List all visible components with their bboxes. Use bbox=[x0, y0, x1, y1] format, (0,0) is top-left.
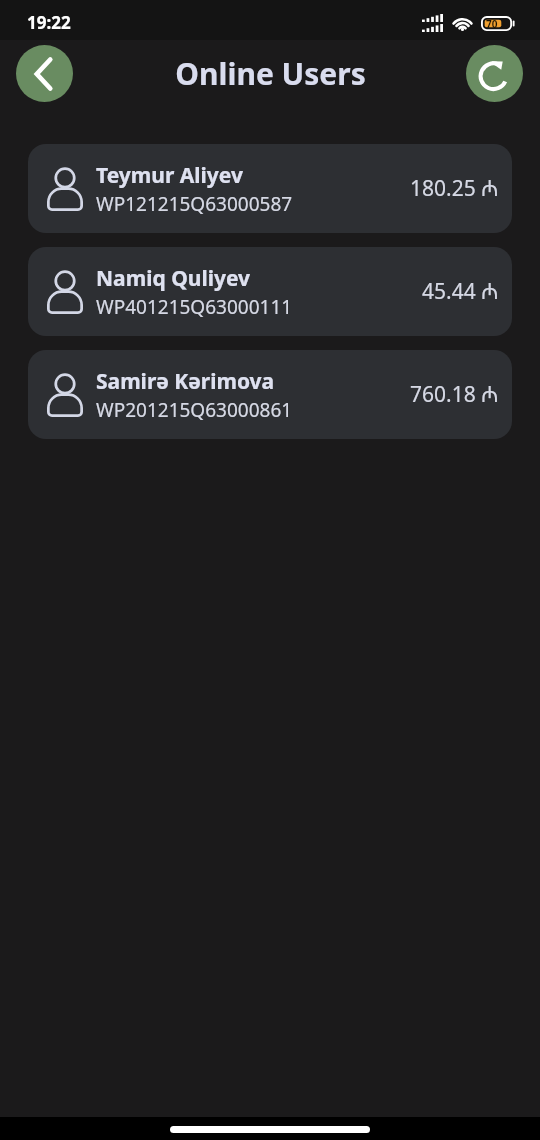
staticText: 70 bbox=[486, 17, 498, 31]
staticText: WP121215Q63000587 bbox=[96, 191, 293, 217]
staticText: 45.44 ₼ bbox=[422, 277, 499, 306]
staticText: Samirə Kərimova bbox=[96, 367, 275, 396]
staticText: WP401215Q63000111 bbox=[96, 294, 293, 320]
button[interactable]: Refresh bbox=[466, 45, 523, 102]
button[interactable]: Samirə Kərimova bbox=[28, 350, 512, 439]
staticText: Teymur Aliyev bbox=[96, 161, 243, 190]
staticText: 19:22 bbox=[27, 11, 71, 34]
staticText: Namiq Quliyev bbox=[96, 264, 251, 293]
button[interactable]: Namiq Quliyev bbox=[28, 247, 512, 336]
button[interactable]: Teymur Aliyev bbox=[28, 144, 512, 233]
staticText: Online Users bbox=[175, 53, 366, 94]
staticText: 760.18 ₼ bbox=[410, 380, 499, 409]
staticText: WP201215Q63000861 bbox=[96, 397, 293, 423]
button[interactable]: Back bbox=[16, 45, 73, 102]
staticText: 180.25 ₼ bbox=[410, 174, 499, 203]
